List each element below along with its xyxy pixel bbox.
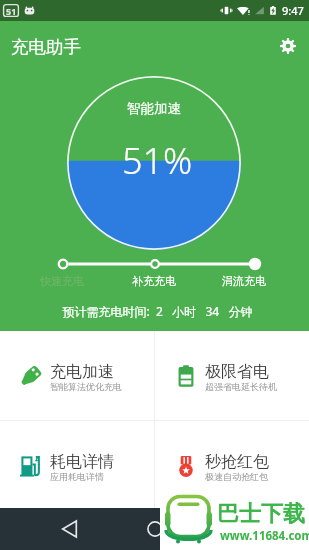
staticText: 涓流充电 [222,274,266,288]
staticText: 补充充电 [132,274,176,288]
staticText: 极限省电 [205,362,269,382]
staticText: 预计需充电时间: 2 小时 34 分钟 [3,303,309,319]
staticText: 充电助手 [11,36,81,58]
button[interactable]: Home [131,508,179,550]
staticText: 巴士下载 [217,500,305,528]
staticText: 超强省电延长待机 [205,381,277,392]
staticText: 秒抢红包 [205,452,269,472]
staticText: 智能加速 [127,100,181,117]
button[interactable]: 极限省电 [155,331,309,420]
staticText: 51 [6,5,17,17]
button[interactable]: 充电加速 [0,331,154,420]
staticText: 充电加速 [50,362,114,382]
button[interactable]: Back [45,508,93,550]
staticText: 51% [122,136,193,185]
button[interactable]: 耗电详情 [0,421,154,510]
staticText: 快速充电 [40,274,84,288]
staticText: www.11684.com [220,528,309,544]
button[interactable]: Settings [275,33,301,59]
button[interactable]: Recents [216,508,264,550]
button[interactable]: 秒抢红包 [155,421,309,510]
staticText: 9:47 [282,3,304,18]
staticText: 应用耗电详情 [50,471,104,482]
staticText: 智能算法优化充电 [50,381,122,392]
staticText: 耗电详情 [50,452,114,472]
staticText: 极速自动抢红包 [205,471,268,482]
